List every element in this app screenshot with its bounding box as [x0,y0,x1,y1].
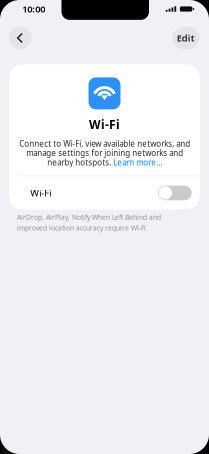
button[interactable]: Back [9,27,31,49]
staticText: AirDrop, AirPlay, Notify When Left Behin… [17,213,161,232]
button[interactable]: Wi-Fi [9,176,200,210]
staticText: Wi-Fi [30,187,51,199]
staticText: Connect to Wi-Fi, view available network… [19,138,190,168]
staticText: 10:00 [22,3,45,15]
staticText: Edit [177,32,195,44]
staticText: Wi-Fi [89,116,120,132]
button[interactable]: Edit [172,27,199,49]
